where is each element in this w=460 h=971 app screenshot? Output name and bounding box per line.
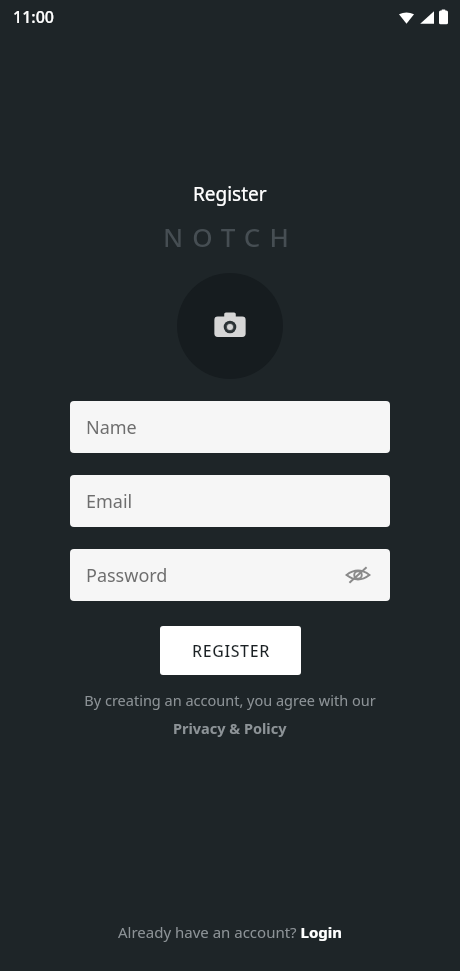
staticText: Privacy & Policy	[173, 718, 287, 738]
button[interactable]: Name	[70, 401, 390, 453]
staticText: Password	[86, 563, 168, 588]
staticText: Name	[86, 415, 137, 440]
staticText: Register	[193, 181, 267, 207]
staticText: By creating an account, you agree with o…	[70, 690, 390, 710]
button[interactable]: Add profile photo	[177, 273, 283, 379]
button[interactable]: Already have an account? Login	[110, 918, 350, 946]
button[interactable]: Email	[70, 475, 390, 527]
staticText: Already have an account? Login	[118, 922, 342, 942]
staticText: 11:00	[13, 6, 54, 28]
staticText: NOTCH	[163, 219, 298, 254]
staticText: REGISTER	[192, 640, 270, 662]
staticText: Email	[86, 489, 133, 514]
button[interactable]: Privacy & Policy	[169, 716, 291, 740]
button[interactable]: Password	[70, 549, 390, 601]
button[interactable]: Toggle password visibility	[342, 559, 374, 591]
button[interactable]: REGISTER	[160, 626, 301, 675]
